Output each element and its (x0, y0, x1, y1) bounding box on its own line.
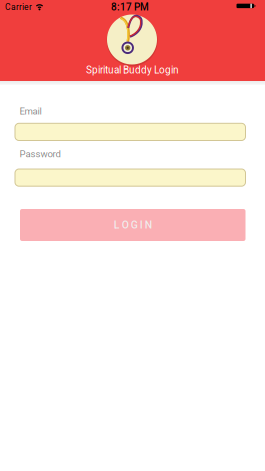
staticText: Password (19, 148, 60, 160)
staticText: L O G I N (114, 219, 152, 231)
staticText: Carrier (5, 2, 32, 12)
staticText: Email (19, 106, 41, 117)
button[interactable]: L O G I N (20, 209, 245, 241)
button[interactable]: Email (15, 123, 245, 140)
button[interactable]: Password (15, 169, 245, 186)
staticText: Spiritual Buddy Login (86, 64, 179, 76)
staticText: 8:17 PM (111, 1, 149, 13)
